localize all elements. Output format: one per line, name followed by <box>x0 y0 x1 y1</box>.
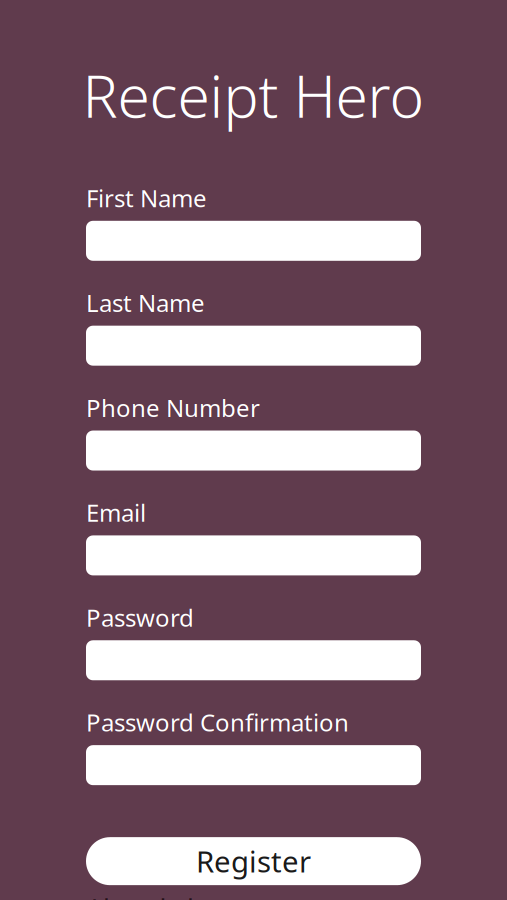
button[interactable]: First Name <box>86 221 421 261</box>
button[interactable]: Password <box>86 640 421 680</box>
staticText: Password Confirmation <box>86 706 349 738</box>
staticText: First Name <box>86 182 207 214</box>
staticText: Phone Number <box>86 392 260 424</box>
button[interactable]: Password Confirmation <box>86 745 421 785</box>
staticText: Password <box>86 601 194 633</box>
staticText: Email <box>86 496 146 528</box>
button[interactable]: Register <box>86 837 421 885</box>
staticText: Already have an account? <box>86 891 285 900</box>
button[interactable]: Email <box>86 535 421 575</box>
staticText: Receipt Hero <box>82 56 424 134</box>
button[interactable]: Phone Number <box>86 430 421 470</box>
staticText: Register <box>196 842 311 881</box>
staticText: Last Name <box>86 287 205 319</box>
button[interactable]: Last Name <box>86 326 421 366</box>
